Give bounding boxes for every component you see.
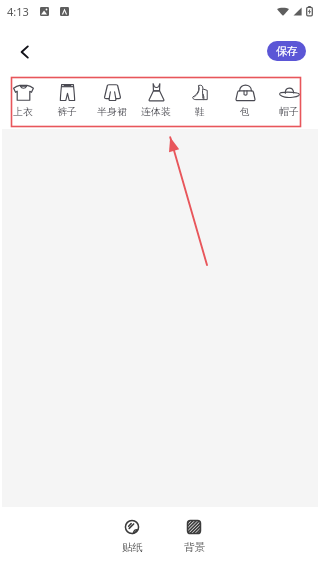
staticText: 贴纸: [122, 541, 143, 554]
button[interactable]: 保存: [267, 41, 306, 61]
staticText: 保存: [276, 44, 298, 58]
staticText: 帽子: [279, 106, 299, 118]
staticText: 上衣: [13, 106, 33, 118]
staticText: 4:13: [7, 4, 29, 19]
staticText: 裤子: [57, 106, 77, 118]
button[interactable]: 贴纸: [110, 520, 154, 554]
button[interactable]: 帽子: [268, 82, 310, 118]
button[interactable]: 半身裙: [91, 82, 133, 118]
button[interactable]: Back: [5, 32, 45, 72]
staticText: 背景: [184, 541, 205, 554]
staticText: 半身裙: [97, 106, 127, 118]
staticText: 连体装: [141, 106, 171, 118]
staticText: 包: [240, 106, 250, 118]
button[interactable]: 裤子: [46, 82, 88, 118]
button[interactable]: 包: [224, 82, 266, 118]
button[interactable]: 鞋: [179, 82, 221, 118]
button[interactable]: 上衣: [2, 82, 44, 118]
button[interactable]: 背景: [172, 520, 216, 554]
button[interactable]: 连体装: [135, 82, 177, 118]
staticText: 鞋: [195, 106, 205, 118]
